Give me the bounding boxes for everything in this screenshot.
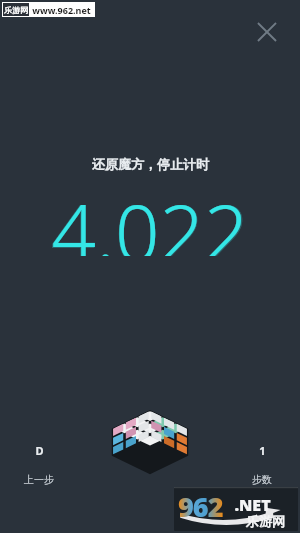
staticText: 步数 (252, 473, 272, 486)
staticText: 上一步 (24, 473, 54, 486)
button[interactable]: Close (249, 14, 285, 50)
staticText: www.962.net (32, 4, 91, 16)
staticText: 乐游网 (246, 513, 285, 529)
staticText: .NET (234, 494, 271, 516)
staticText: 1 (259, 443, 266, 458)
button[interactable]: Rubik's cube (108, 405, 192, 495)
staticText: D (35, 443, 44, 458)
staticText: 4.022 (51, 178, 249, 256)
staticText: 乐游网 (4, 5, 28, 15)
button[interactable]: D (8, 441, 70, 488)
button[interactable]: 1 (231, 441, 293, 488)
staticText: 4.022 (50, 178, 250, 256)
staticText: 还原魔方，停止计时 (92, 156, 209, 172)
staticText: 962 (178, 488, 223, 525)
